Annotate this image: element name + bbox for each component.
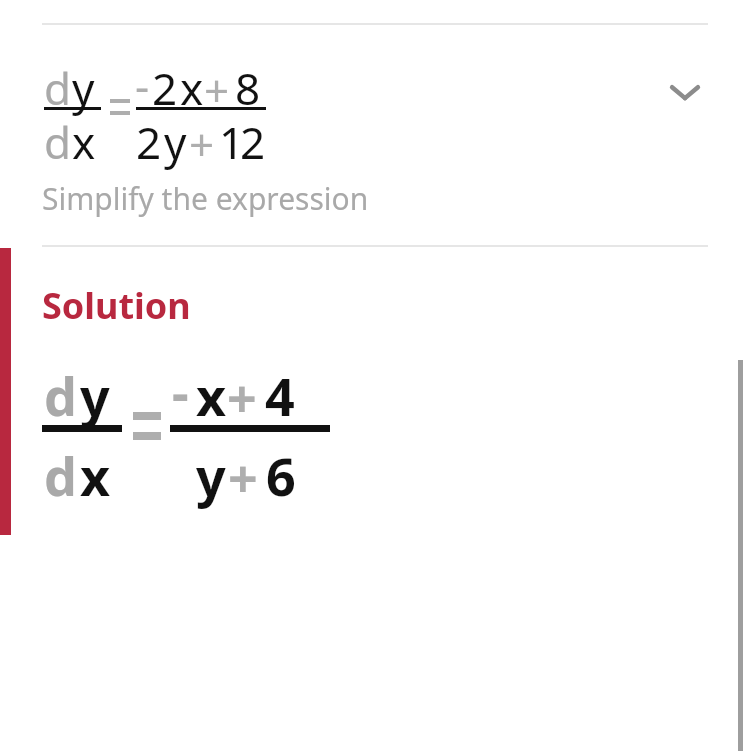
staticText: d (44, 440, 77, 511)
staticText: y (196, 440, 226, 511)
staticText: 6 (266, 440, 296, 511)
staticText: Solution (42, 281, 191, 330)
staticText: d (44, 112, 72, 172)
staticText: x (180, 58, 204, 118)
staticText: x (72, 112, 96, 172)
staticText: d (44, 58, 72, 118)
staticText: + (227, 362, 257, 433)
button[interactable] (0, 25, 750, 246)
staticText: - (135, 55, 150, 115)
staticText: y (72, 58, 95, 118)
staticText: + (189, 114, 215, 174)
staticText: 2 (240, 112, 266, 172)
staticText: 2 (152, 58, 178, 118)
staticText: Simplify the expression (42, 178, 369, 219)
staticText: 4 (265, 360, 295, 431)
staticText: + (204, 60, 230, 120)
staticText: 2 (136, 112, 162, 172)
staticText: x (80, 440, 111, 511)
staticText: + (228, 442, 258, 513)
staticText: x (196, 360, 227, 431)
staticText: 1 (219, 112, 245, 172)
staticText: d (44, 360, 77, 431)
staticText: y (80, 360, 110, 431)
button[interactable]: Expand (653, 60, 717, 124)
staticText: y (164, 112, 187, 172)
staticText: - (172, 356, 189, 427)
staticText: 8 (235, 58, 261, 118)
